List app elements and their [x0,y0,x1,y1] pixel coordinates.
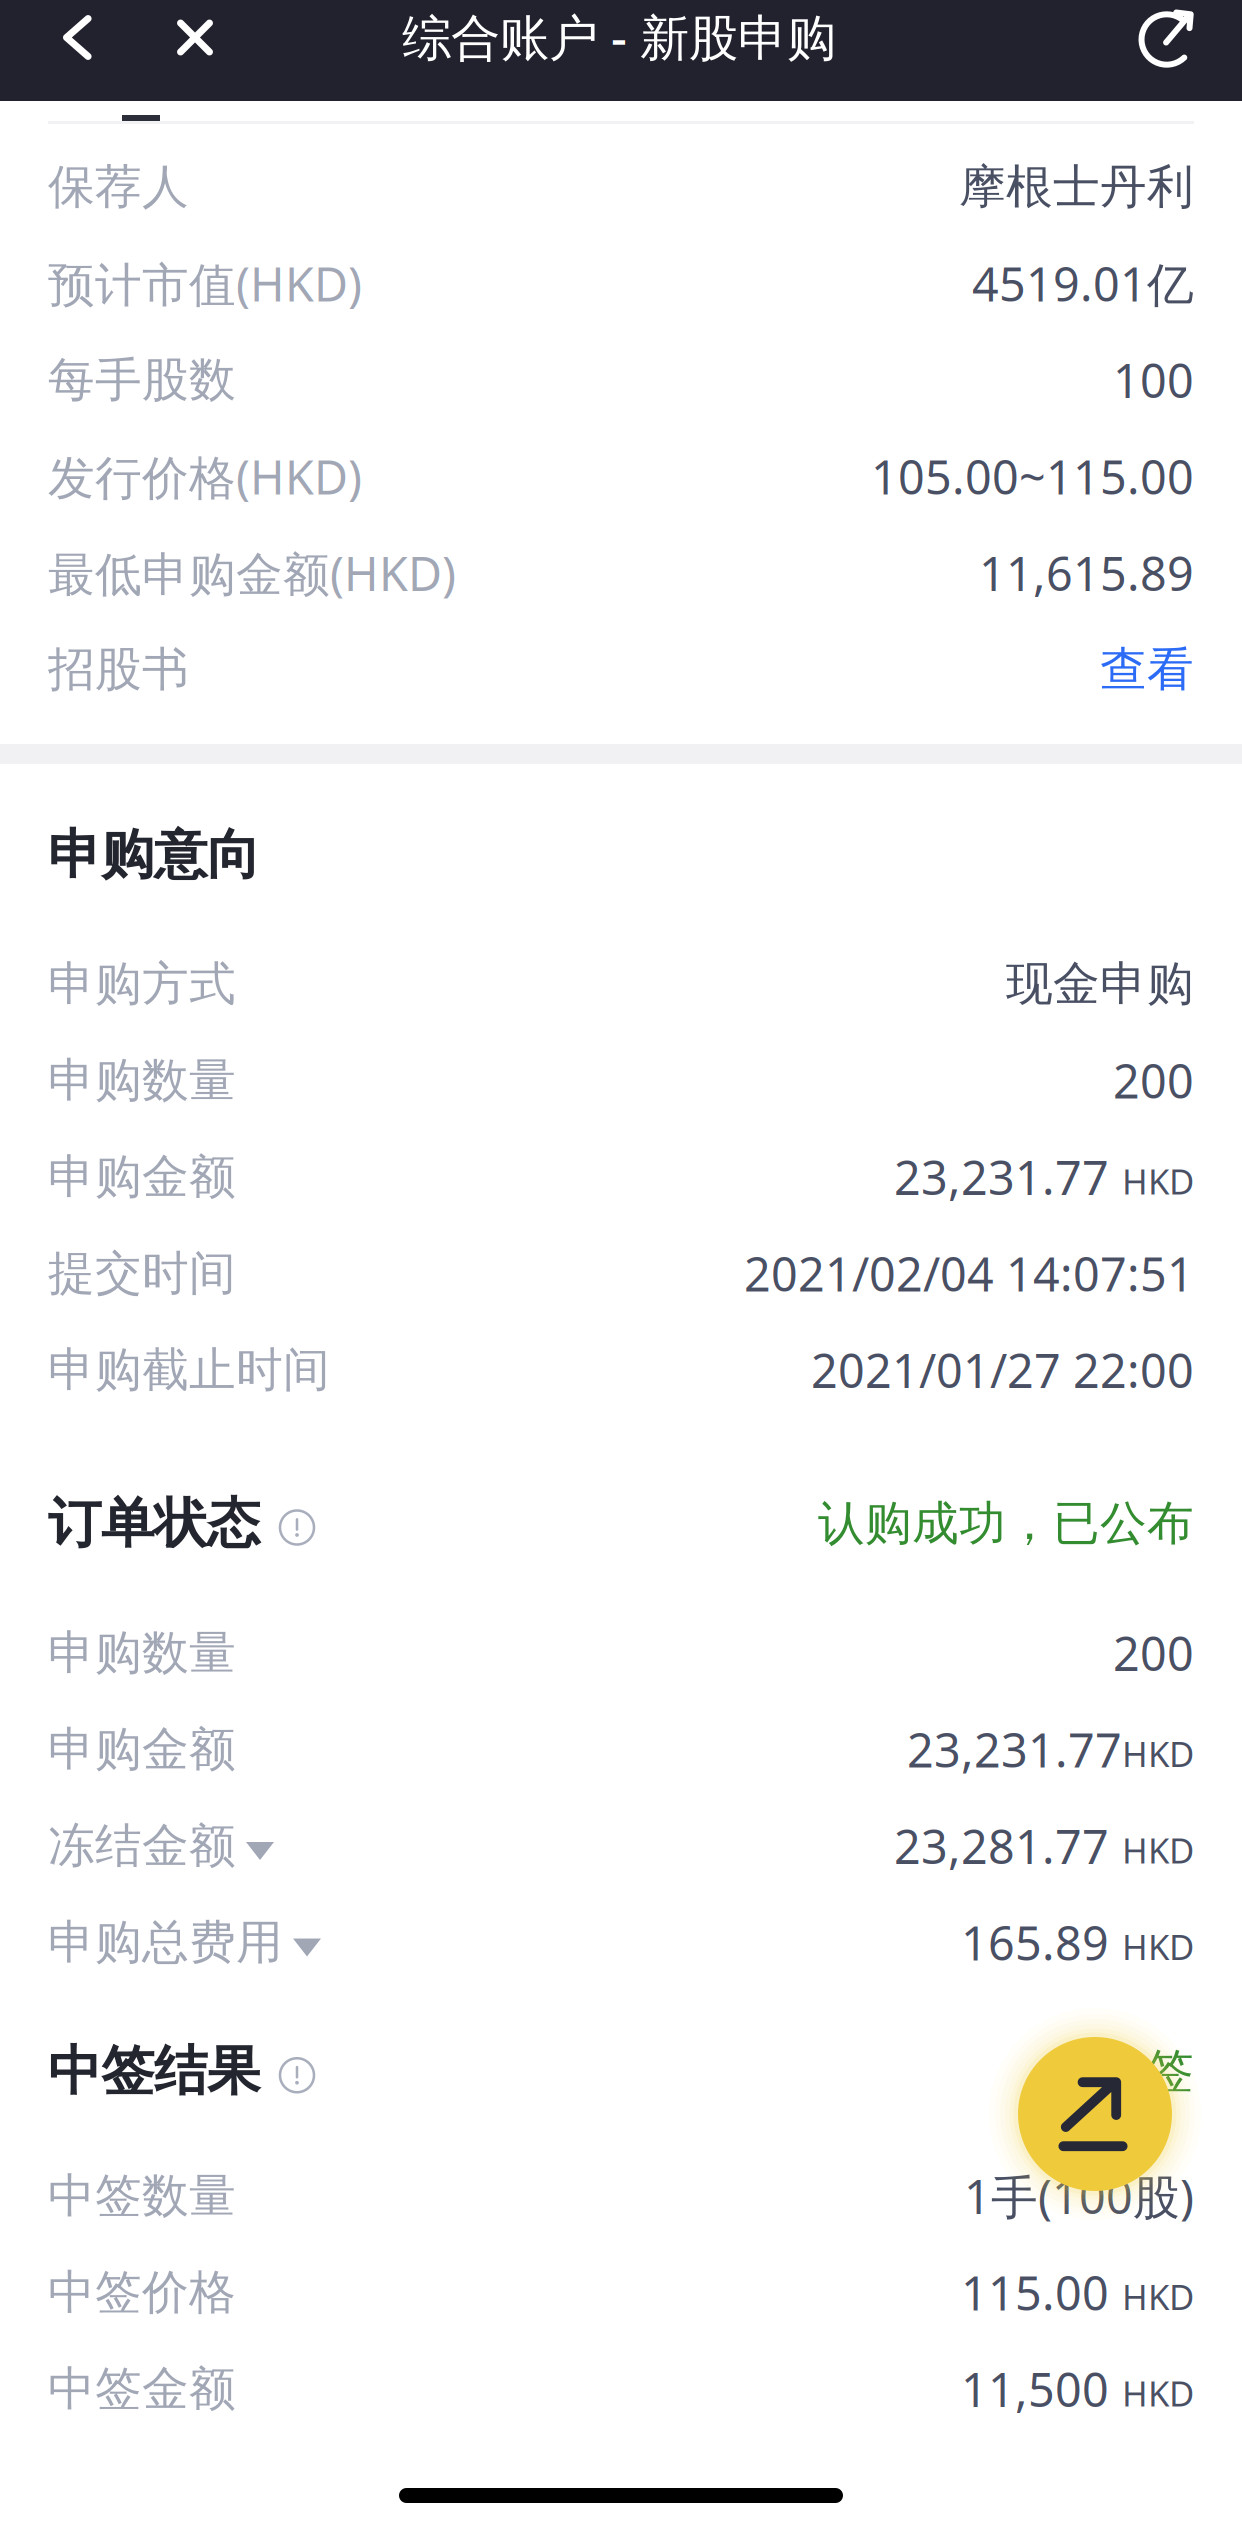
staticText: HKD [1122,1827,1194,1873]
staticText: 保荐人 [48,158,189,216]
button[interactable]: 预计市值(HKD) [0,235,1242,332]
staticText: 23,281.77 [894,1815,1109,1877]
button[interactable]: 中签价格 [0,2244,1242,2341]
button[interactable]: 申购总费用 [0,1894,1242,1991]
staticText: 申购总费用 [48,1914,283,1971]
button[interactable]: 申购截止时间 [0,1322,1242,1418]
staticText: 200 [1113,1622,1194,1684]
button[interactable]: Close [123,0,253,101]
staticText: 订单状态 [48,1491,260,1556]
staticText: 165.89 [961,1911,1109,1973]
button[interactable]: 中签数量 [0,2148,1242,2244]
staticText: 中签价格 [48,2264,236,2321]
staticText: 每手股数 [48,351,236,409]
button[interactable]: 招股书 [0,621,1242,718]
staticText: 综合账户 - 新股申购 [402,4,836,69]
staticText: 11,615.89 [979,542,1194,604]
staticText: 现金申购 [1006,955,1194,1013]
staticText: 中签金额 [48,2360,236,2418]
staticText: 23,231.77 [894,1146,1109,1208]
staticText: 中签 [1100,2043,1194,2100]
button[interactable]: 保荐人 [0,139,1242,235]
staticText: HKD [1122,1923,1194,1969]
staticText: 预计市值(HKD) [48,252,362,314]
staticText: 200 [1113,1049,1194,1111]
staticText: 发行价格(HKD) [48,445,362,507]
button[interactable]: Refresh [1087,0,1242,101]
button[interactable]: 每手股数 [0,332,1242,428]
staticText: 提交时间 [48,1245,236,1302]
button[interactable]: 申购金额 [0,1129,1242,1225]
staticText: 2021/02/04 14:07:51 [744,1242,1194,1304]
staticText: HKD [1122,2273,1194,2319]
staticText: 摩根士丹利 [959,158,1194,216]
button[interactable]: Back [0,0,123,101]
button[interactable]: 申购数量 [0,1605,1242,1701]
button[interactable]: 提交时间 [0,1225,1242,1322]
staticText: 冻结金额 [48,1817,236,1875]
staticText: 申购数量 [48,1052,236,1109]
button[interactable]: About 中签结果 [260,2054,314,2088]
staticText: 中签数量 [48,2167,236,2225]
staticText: 4519.01亿 [972,252,1194,314]
staticText: 105.00~115.00 [871,445,1194,507]
button[interactable]: 冻结金额 [0,1798,1242,1894]
staticText: 申购截止时间 [48,1341,330,1399]
button[interactable]: 最低申购金额(HKD) [0,525,1242,621]
button[interactable]: 申购数量 [0,1032,1242,1129]
staticText: 申购金额 [48,1148,236,1206]
staticText: 认购成功，已公布 [818,1495,1194,1552]
button[interactable]: About 订单状态 [260,1506,314,1540]
staticText: 1手(100股) [964,2165,1194,2227]
staticText: HKD [1122,2370,1194,2416]
staticText: HKD [1122,1730,1194,1776]
button[interactable]: 中签金额 [0,2341,1242,2437]
button[interactable]: 申购方式 [0,936,1242,1032]
staticText: 100 [1113,349,1194,411]
button[interactable]: 申购金额 [0,1701,1242,1798]
staticText: 申购数量 [48,1624,236,1682]
staticText: 11,500 [961,2358,1109,2420]
staticText: 115.00 [961,2261,1109,2323]
staticText: 申购方式 [48,955,236,1013]
staticText: 申购金额 [48,1721,236,1778]
staticText: 23,231.77 [907,1718,1122,1780]
staticText: 查看 [1100,641,1194,698]
staticText: 申购意向 [48,822,260,888]
staticText: 2021/01/27 22:00 [811,1339,1194,1401]
staticText: HKD [1122,1158,1194,1204]
button[interactable]: Share [988,2007,1202,2221]
staticText: 中签结果 [48,2038,260,2104]
button[interactable]: 发行价格(HKD) [0,428,1242,525]
staticText: 招股书 [48,641,189,698]
staticText: 最低申购金额(HKD) [48,542,456,604]
